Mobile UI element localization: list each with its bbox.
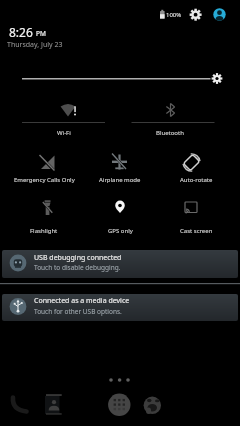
staticText: Touch for other USB options. <box>34 307 122 316</box>
staticText: Cast screen <box>180 227 213 235</box>
staticText: Emergency Calls Only <box>14 176 75 184</box>
button[interactable] <box>6 394 30 418</box>
staticText: Touch to disable debugging. <box>34 263 121 272</box>
staticText: 100% <box>166 11 182 19</box>
staticText: Bluetooth <box>156 129 184 137</box>
button[interactable] <box>116 96 224 138</box>
button[interactable] <box>6 198 82 236</box>
button[interactable] <box>42 394 64 418</box>
button[interactable] <box>10 96 118 138</box>
staticText: Auto-rotate <box>180 176 213 184</box>
staticText: USB debugging connected <box>34 253 122 263</box>
button[interactable] <box>10 68 230 88</box>
staticText: PM <box>36 29 46 38</box>
staticText: Airplane mode <box>99 176 141 184</box>
button[interactable] <box>158 150 234 188</box>
button[interactable] <box>158 198 234 236</box>
button[interactable] <box>106 393 132 419</box>
button[interactable]: Connected as a media device <box>2 294 238 321</box>
staticText: Connected as a media device <box>34 296 130 306</box>
staticText: Thursday, July 23 <box>7 40 63 50</box>
button[interactable] <box>211 6 228 23</box>
staticText: Flashlight <box>30 227 58 235</box>
button[interactable]: USB debugging connected <box>2 250 238 278</box>
button[interactable] <box>6 150 82 188</box>
button[interactable] <box>188 6 204 23</box>
button[interactable] <box>82 150 158 188</box>
button[interactable] <box>142 395 162 417</box>
button[interactable] <box>82 198 158 236</box>
staticText: Wi-Fi <box>57 129 71 137</box>
staticText: 8:26 <box>9 24 33 40</box>
staticText: GPS only <box>108 227 133 235</box>
